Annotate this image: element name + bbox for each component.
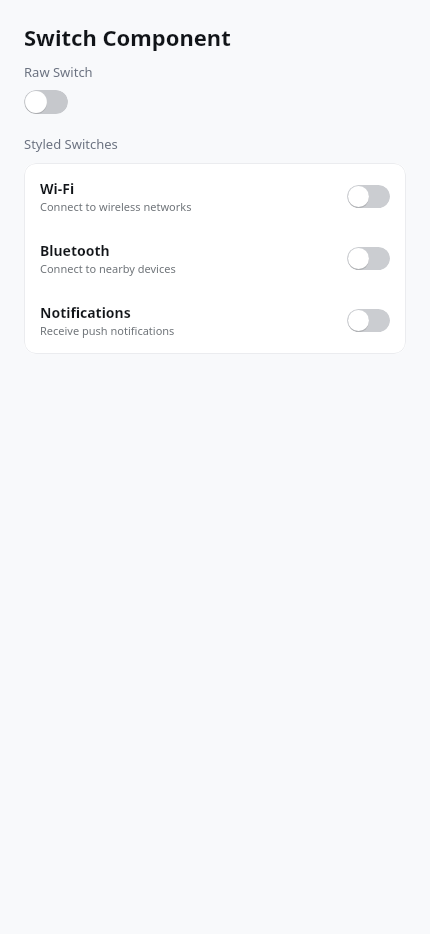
staticText: Raw Switch <box>24 63 93 81</box>
staticText: Connect to wireless networks <box>40 199 192 214</box>
button[interactable]: Wi-Fi <box>24 173 406 220</box>
button[interactable]: Notifications <box>24 297 406 344</box>
staticText: Receive push notifications <box>40 323 175 338</box>
staticText: Bluetooth <box>40 241 110 260</box>
staticText: Wi-Fi <box>40 179 75 198</box>
staticText: Notifications <box>40 303 131 322</box>
button[interactable]: Wi-Fi toggle, off <box>347 185 390 208</box>
button[interactable]: Notifications toggle, off <box>347 309 390 332</box>
button[interactable]: Bluetooth toggle, off <box>347 247 390 270</box>
staticText: Styled Switches <box>24 135 118 153</box>
button[interactable]: Raw switch, off <box>24 90 68 114</box>
staticText: Connect to nearby devices <box>40 261 176 276</box>
button[interactable]: Bluetooth <box>24 235 406 282</box>
staticText: Switch Component <box>24 22 231 52</box>
